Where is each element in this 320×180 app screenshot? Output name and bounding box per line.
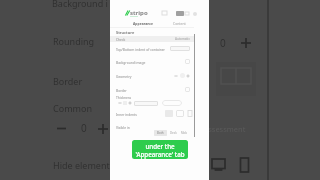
button[interactable]: Mobile view: [239, 157, 250, 173]
staticText: Geometry: [116, 74, 132, 78]
button[interactable]: Undo: [162, 11, 167, 15]
staticText: 0: [220, 36, 226, 50]
button[interactable]: under the 'Appearance' tab: [132, 140, 188, 159]
button[interactable]: Account: [193, 12, 197, 16]
staticText: Rounding: [53, 35, 95, 47]
staticText: stripo: [130, 9, 148, 16]
button[interactable]: Check: [110, 36, 194, 42]
staticText: Inner indents: [116, 112, 137, 116]
button[interactable]: Background image: [110, 57, 194, 66]
button[interactable]: Content: [166, 20, 192, 27]
staticText: Desk: [170, 131, 177, 135]
button[interactable]: Border: [110, 85, 194, 94]
button[interactable]: Both: [154, 130, 167, 136]
staticText: Automatic: [175, 37, 190, 41]
staticText: under the 'Appearance' tab: [135, 142, 185, 158]
staticText: Check: [116, 37, 126, 41]
staticText: Background i: [52, 0, 108, 9]
button[interactable]: Appearance: [128, 20, 159, 27]
button[interactable]: Desktop view: [211, 158, 226, 172]
button[interactable]: Indent vertical: [187, 110, 193, 117]
staticText: assessment: [204, 124, 246, 134]
staticText: Thickness: [116, 95, 132, 99]
button[interactable]: Geometry: [110, 71, 194, 80]
staticText: Common: [53, 102, 92, 114]
button[interactable]: Preview: [176, 11, 184, 16]
staticText: Border: [116, 88, 127, 92]
button[interactable]: Stripo home: [125, 9, 148, 16]
staticText: Both: [157, 131, 164, 135]
button[interactable]: Settings: [185, 12, 189, 15]
staticText: Top/Bottom indent of container: [116, 47, 165, 51]
staticText: Hide element: [53, 159, 110, 171]
button[interactable]: Mob: [181, 130, 188, 136]
staticText: Content: [173, 21, 186, 26]
staticText: 0: [81, 121, 87, 135]
staticText: Visible in: [116, 125, 130, 129]
staticText: Structure: [116, 30, 135, 35]
staticText: Border: [53, 75, 83, 87]
staticText: Background image: [116, 60, 146, 64]
button[interactable]: Desk: [170, 130, 177, 136]
button[interactable]: Indent horizontal: [176, 110, 184, 117]
button[interactable]: Top/Bottom indent of container: [110, 44, 194, 53]
staticText: Mob: [181, 131, 188, 135]
staticText: Appearance: [133, 21, 154, 26]
